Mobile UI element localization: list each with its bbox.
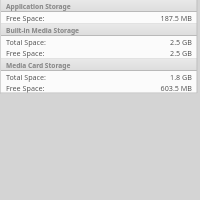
staticText: Total Space: [6,37,47,47]
button[interactable]: Free Space: [1,47,197,58]
button[interactable]: Total Space: [1,36,197,47]
button[interactable]: Free Space: [1,82,197,93]
staticText: Media Card Storage [6,61,71,70]
staticText: 603.5 MB [160,83,192,93]
staticText: 2.5 GB [170,37,192,47]
staticText: 1.8 GB [170,72,192,82]
staticText: Free Space: [6,13,45,23]
staticText: Total Space: [6,72,47,82]
staticText: Free Space: [6,83,45,93]
button[interactable]: Total Space: [1,71,197,82]
staticText: 187.5 MB [160,13,192,23]
staticText: Application Storage [6,2,71,11]
staticText: 2.5 GB [170,48,192,58]
staticText: Built-in Media Storage [6,26,79,35]
staticText: Free Space: [6,48,45,58]
button[interactable]: Free Space: [1,12,197,23]
